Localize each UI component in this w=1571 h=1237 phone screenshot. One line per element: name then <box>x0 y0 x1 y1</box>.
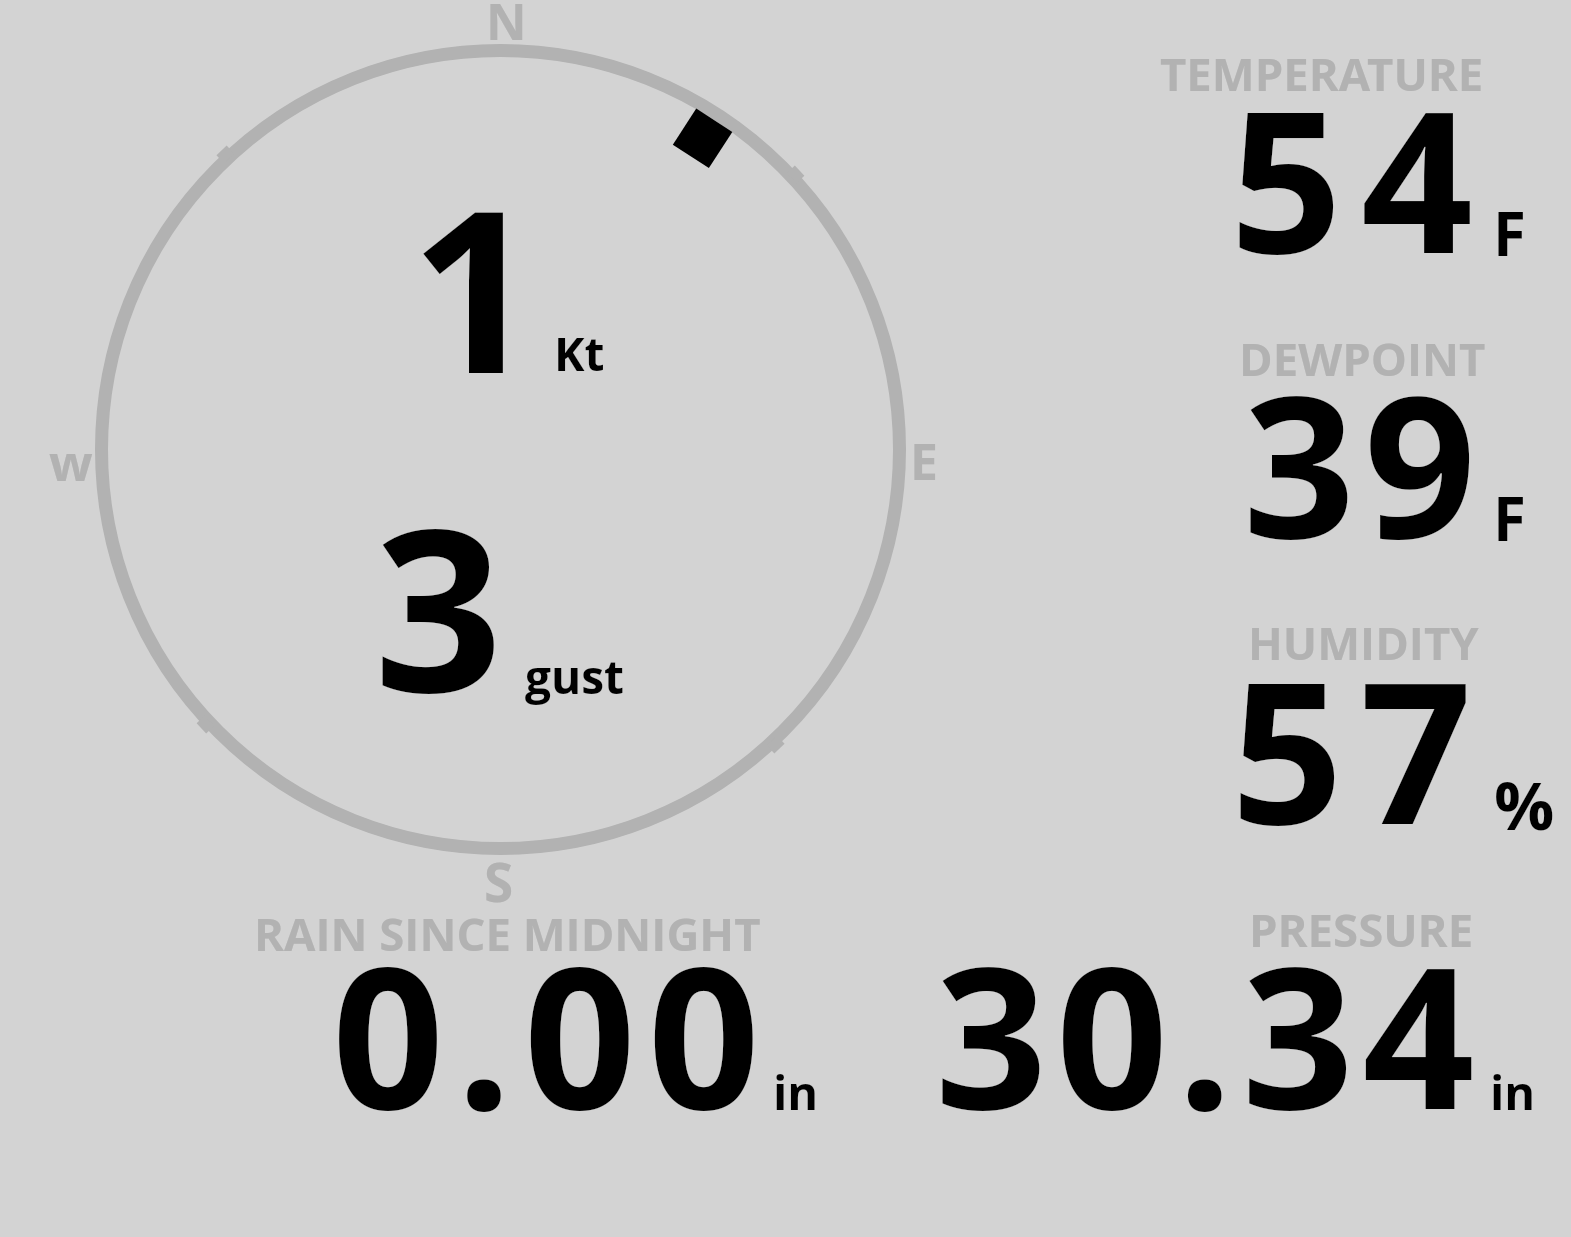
staticText: 3 <box>374 452 503 758</box>
button[interactable]: Dewpoint 39 degrees Fahrenheit <box>1150 330 1571 560</box>
staticText: S <box>484 845 514 917</box>
staticText: in <box>1490 1060 1536 1124</box>
staticText: Kt <box>554 322 605 385</box>
staticText: gust <box>525 645 625 708</box>
staticText: % <box>1494 758 1555 849</box>
staticText: 0.00 <box>332 900 772 1167</box>
staticText: HUMIDITY <box>1248 611 1479 673</box>
staticText: w <box>49 426 93 495</box>
staticText: TEMPERATURE <box>1160 42 1484 104</box>
staticText: DEWPOINT <box>1239 327 1486 389</box>
button[interactable]: Wind direction compass, 1 knot gusting 3 <box>100 50 900 850</box>
staticText: PRESSURE <box>1249 898 1474 960</box>
staticText: in <box>773 1060 819 1124</box>
button[interactable]: Temperature 54 degrees Fahrenheit <box>1150 45 1571 275</box>
staticText: N <box>486 0 527 55</box>
staticText: F <box>1493 192 1526 274</box>
staticText: 54 <box>1230 44 1492 311</box>
staticText: E <box>910 427 939 495</box>
button[interactable]: Humidity 57 percent <box>1150 615 1571 845</box>
staticText: 30.34 <box>935 900 1484 1167</box>
button[interactable]: Rain since midnight 0.00 inches <box>240 905 840 1125</box>
staticText: 39 <box>1243 329 1485 596</box>
staticText: F <box>1493 477 1526 559</box>
staticText: RAIN SINCE MIDNIGHT <box>254 902 761 964</box>
staticText: 57 <box>1231 615 1489 882</box>
staticText: 1 <box>410 133 539 439</box>
button[interactable]: Pressure 30.34 inches <box>900 905 1540 1125</box>
